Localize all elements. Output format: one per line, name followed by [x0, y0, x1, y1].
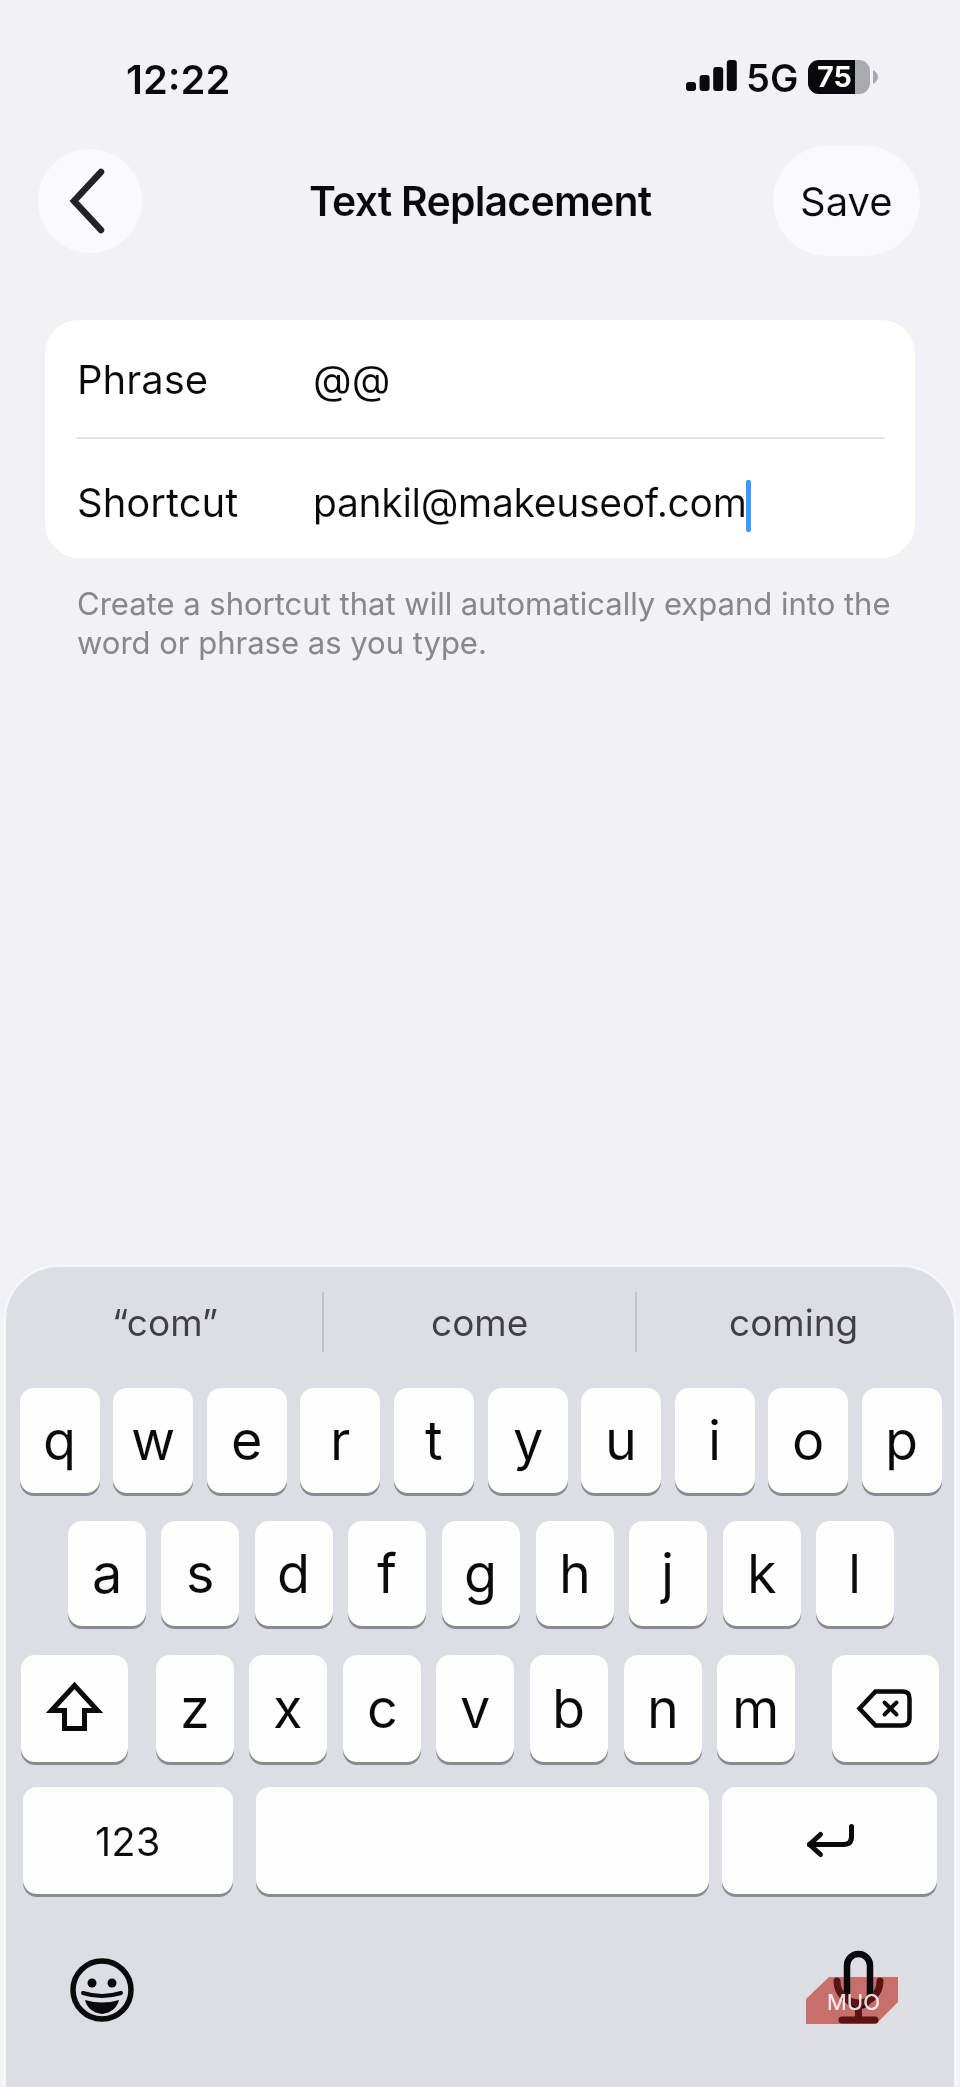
button[interactable] — [38, 149, 142, 253]
staticText: pankil@makeuseof.com — [313, 479, 747, 526]
staticText: u — [605, 1408, 637, 1473]
staticText: k — [747, 1541, 777, 1606]
button[interactable]: MUO — [790, 1935, 915, 2040]
button[interactable]: h — [536, 1521, 614, 1626]
staticText: f — [377, 1541, 397, 1606]
button[interactable]: y — [488, 1388, 568, 1493]
button[interactable]: a — [68, 1521, 146, 1626]
staticText: come — [431, 1300, 529, 1345]
button[interactable]: Save — [773, 146, 920, 256]
staticText: 5G — [746, 55, 799, 97]
staticText: a — [92, 1541, 123, 1606]
button[interactable]: d — [255, 1521, 333, 1626]
button[interactable] — [832, 1655, 939, 1762]
staticText: o — [792, 1408, 825, 1473]
button[interactable]: g — [442, 1521, 520, 1626]
staticText: coming — [729, 1300, 859, 1345]
button[interactable]: 123 — [23, 1787, 233, 1894]
button[interactable] — [256, 1787, 709, 1894]
button[interactable] — [722, 1787, 937, 1894]
button[interactable] — [21, 1655, 128, 1762]
staticText: Phrase — [77, 355, 209, 403]
staticText: x — [273, 1676, 303, 1741]
button[interactable]: c — [343, 1655, 421, 1762]
staticText: t — [425, 1408, 443, 1473]
staticText: z — [180, 1676, 210, 1741]
button[interactable]: v — [436, 1655, 514, 1762]
staticText: @@ — [313, 355, 391, 403]
staticText: q — [43, 1408, 77, 1473]
staticText: e — [231, 1408, 263, 1473]
button[interactable]: u — [581, 1388, 661, 1493]
button[interactable]: r — [300, 1388, 380, 1493]
staticText: Create a shortcut that will automaticall… — [77, 585, 907, 662]
button[interactable]: z — [156, 1655, 234, 1762]
staticText: Shortcut — [77, 478, 239, 526]
button[interactable]: w — [113, 1388, 193, 1493]
button[interactable]: k — [723, 1521, 801, 1626]
staticText: y — [513, 1408, 544, 1473]
staticText: 12:22 — [126, 55, 231, 99]
staticText: i — [708, 1408, 722, 1473]
staticText: c — [367, 1676, 398, 1741]
button[interactable]: f — [348, 1521, 426, 1626]
button[interactable]: l — [816, 1521, 894, 1626]
button[interactable]: i — [675, 1388, 755, 1493]
staticText: Save — [800, 177, 893, 225]
button[interactable]: b — [530, 1655, 608, 1762]
button[interactable]: e — [207, 1388, 287, 1493]
button[interactable]: n — [624, 1655, 702, 1762]
staticText: MUO — [827, 1989, 881, 2016]
button[interactable]: o — [768, 1388, 848, 1493]
staticText: v — [460, 1676, 491, 1741]
button[interactable]: x — [249, 1655, 327, 1762]
button[interactable]: t — [394, 1388, 474, 1493]
staticText: m — [732, 1676, 780, 1741]
button[interactable]: s — [161, 1521, 239, 1626]
staticText: 75 — [817, 59, 852, 94]
button[interactable]: m — [717, 1655, 795, 1762]
staticText: b — [552, 1676, 586, 1741]
button[interactable] — [60, 1950, 144, 2034]
staticText: Text Replacement — [309, 176, 652, 226]
staticText: r — [330, 1408, 351, 1473]
staticText: w — [131, 1408, 176, 1473]
staticText: p — [885, 1408, 919, 1473]
staticText: d — [277, 1541, 311, 1606]
staticText: n — [647, 1676, 679, 1741]
button[interactable]: q — [20, 1388, 100, 1493]
staticText: “com” — [112, 1300, 219, 1345]
staticText: g — [464, 1541, 498, 1606]
button[interactable]: j — [629, 1521, 707, 1626]
button[interactable]: p — [862, 1388, 942, 1493]
staticText: h — [559, 1541, 591, 1606]
staticText: s — [186, 1541, 215, 1606]
staticText: j — [661, 1541, 675, 1606]
staticText: 123 — [95, 1817, 161, 1865]
staticText: l — [848, 1541, 862, 1606]
